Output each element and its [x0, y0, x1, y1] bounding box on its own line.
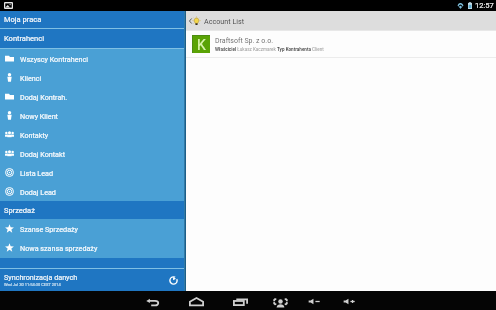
button[interactable]: Kontakty	[0, 125, 186, 144]
button[interactable]: Dodaj Kontakt	[0, 144, 186, 163]
button[interactable]: Dodaj Lead	[0, 182, 186, 201]
staticText: Wszyscy Kontrahenci	[20, 55, 88, 63]
staticText: Nowa szansa sprzedaży	[20, 244, 98, 252]
staticText: Dodaj Kontrah.	[20, 93, 68, 101]
button[interactable]: Recent apps	[231, 291, 249, 310]
button[interactable]: Lista Lead	[0, 163, 186, 182]
button[interactable]: Back	[188, 15, 193, 27]
staticText: 12:57	[475, 1, 494, 10]
staticText: Dodaj Kontakt	[20, 150, 66, 158]
staticText: Wed Jul 30 11:54:30 CEST 2014	[4, 282, 61, 287]
button[interactable]: Back	[143, 291, 161, 310]
other: Refresh	[169, 276, 178, 285]
staticText: Nowy Klient	[20, 112, 58, 120]
button[interactable]: Dodaj Kontrah.	[0, 87, 186, 106]
button[interactable]: Screenshot	[271, 291, 289, 310]
button[interactable]: Volume down	[305, 291, 323, 310]
button[interactable]: Klienci	[0, 68, 186, 87]
button[interactable]: Home	[187, 291, 205, 310]
staticText: Dodaj Lead	[20, 188, 56, 196]
button[interactable]: Szanse Sprzedaży	[0, 219, 186, 238]
staticText: Lista Lead	[20, 169, 54, 177]
staticText: Account List	[204, 17, 245, 25]
button[interactable]: Nowa szansa sprzedaży	[0, 238, 186, 257]
staticText: Synchronizacja danych	[4, 273, 78, 281]
staticText: Kontrahenci	[4, 34, 44, 43]
staticText: Szanse Sprzedaży	[20, 225, 79, 233]
button[interactable]: K	[186, 31, 496, 57]
staticText: Draftsoft Sp. z o.o.	[215, 37, 273, 45]
button[interactable]: Nowy Klient	[0, 106, 186, 125]
staticText: K	[197, 37, 206, 53]
button[interactable]: Wszyscy Kontrahenci	[0, 49, 186, 68]
staticText: Sprzedaż	[4, 206, 35, 215]
button[interactable]: Synchronizacja danych	[0, 269, 186, 291]
staticText: Właściciel Łukasz Kaczmarek Typ Kontrahe…	[215, 47, 324, 52]
button[interactable]: Volume up	[340, 291, 358, 310]
staticText: Moja praca	[4, 15, 42, 24]
staticText: Kontakty	[20, 131, 49, 139]
staticText: Klienci	[20, 74, 42, 82]
